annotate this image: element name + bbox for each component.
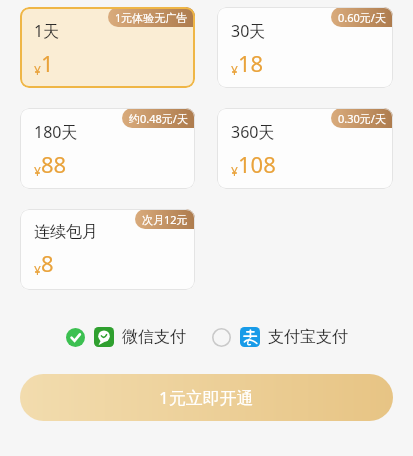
button[interactable]: 约0.48元/天 [20, 108, 195, 189]
staticText: ¥ [231, 62, 238, 78]
other: WeChat Pay [94, 327, 114, 347]
staticText: 次月12元 [142, 212, 188, 227]
other: Not selected [212, 328, 231, 347]
staticText: 微信支付 [122, 327, 186, 347]
other: Selected [66, 328, 85, 347]
staticText: 30天 [231, 20, 266, 42]
staticText: 1元立即开通 [159, 386, 254, 409]
staticText: 180天 [34, 121, 78, 143]
staticText: ¥ [231, 163, 238, 179]
staticText: 88 [41, 149, 67, 179]
staticText: 108 [238, 149, 276, 179]
button[interactable]: 0.60元/天 [217, 7, 393, 88]
staticText: ¥ [34, 62, 41, 78]
staticText: 1天 [34, 20, 60, 42]
other: Alipay [240, 327, 260, 347]
button[interactable]: 次月12元 [20, 209, 195, 290]
staticText: 1元体验无广告 [115, 10, 188, 25]
staticText: 18 [238, 48, 264, 78]
staticText: ¥ [34, 163, 41, 179]
button[interactable]: 0.30元/天 [217, 108, 393, 189]
staticText: 约0.48元/天 [129, 111, 188, 126]
staticText: 连续包月 [34, 222, 98, 242]
staticText: 1 [41, 48, 54, 78]
button[interactable]: Not selected [210, 323, 350, 351]
staticText: 8 [41, 248, 54, 278]
staticText: 360天 [231, 121, 275, 143]
button[interactable]: 1元立即开通 [20, 374, 393, 421]
button[interactable]: Selected [64, 323, 188, 351]
button[interactable]: 1元体验无广告 [20, 7, 195, 88]
staticText: 0.30元/天 [338, 111, 386, 126]
staticText: 0.60元/天 [338, 10, 386, 25]
staticText: 支付宝支付 [268, 327, 348, 347]
staticText: ¥ [34, 262, 41, 278]
